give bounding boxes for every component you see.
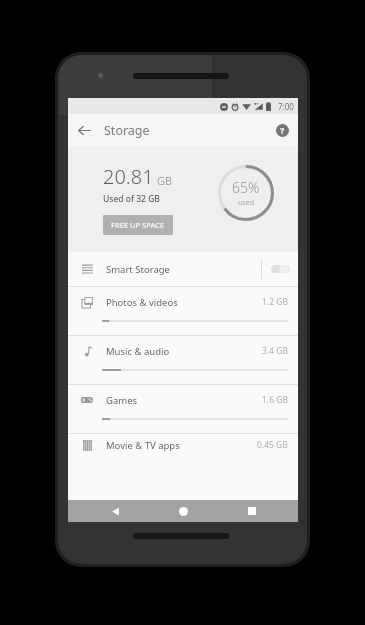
button[interactable]: FREE UP SPACE (103, 215, 173, 235)
staticText: 1.6 GB (262, 394, 288, 406)
staticText: Photos & videos (106, 296, 178, 309)
button[interactable]: Smart Storage toggle (262, 252, 298, 286)
button[interactable]: Back (68, 114, 100, 146)
button[interactable]: Help (266, 114, 298, 146)
button[interactable]: Recent apps (230, 500, 274, 522)
button[interactable]: Photos & videos (68, 287, 298, 335)
button[interactable]: Music & audio (68, 336, 298, 384)
staticText: 0.45 GB (257, 439, 288, 451)
staticText: 3.4 GB (262, 345, 288, 357)
staticText: 65% (232, 178, 260, 197)
staticText: Movie & TV apps (106, 439, 180, 452)
staticText: ? (280, 124, 285, 136)
button[interactable]: Games (68, 385, 298, 433)
staticText: Games (106, 394, 138, 407)
button[interactable]: Back (93, 500, 137, 522)
staticText: 7:00 (278, 101, 294, 112)
button[interactable]: Movie & TV apps (68, 434, 298, 452)
staticText: 1.2 GB (262, 296, 288, 308)
button[interactable]: Smart Storage (68, 252, 298, 286)
staticText: 20.81 (103, 163, 154, 190)
staticText: Used of 32 GB (103, 193, 160, 205)
staticText: used (238, 198, 254, 208)
staticText: Music & audio (106, 345, 170, 358)
staticText: Smart Storage (106, 263, 170, 276)
staticText: FREE UP SPACE (111, 220, 165, 230)
staticText: GB (157, 173, 172, 188)
button[interactable]: Home (161, 500, 205, 522)
staticText: Storage (104, 122, 150, 139)
